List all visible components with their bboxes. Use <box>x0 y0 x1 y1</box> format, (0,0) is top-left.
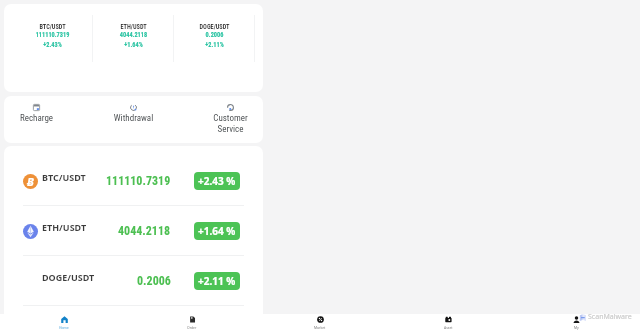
button[interactable]: BTC/USDT <box>12 4 93 92</box>
staticText: ScanMalware <box>588 312 632 322</box>
other: Home <box>61 316 68 323</box>
staticText: +2.43 % <box>198 174 236 188</box>
button[interactable]: ETH/USDT <box>93 4 174 92</box>
button[interactable]: My <box>512 314 640 331</box>
button[interactable]: Withdrawal <box>85 96 182 143</box>
other: Withdrawal <box>130 104 137 111</box>
other: Market <box>317 316 324 323</box>
staticText: +1.64 % <box>198 224 236 238</box>
staticText: 0.2006 <box>137 274 171 288</box>
other: My <box>573 316 580 323</box>
staticText: 111110.7319 <box>12 31 93 38</box>
staticText: Recharge <box>4 113 85 124</box>
staticText: +2.43% <box>12 41 93 48</box>
staticText: Order <box>187 325 197 330</box>
other: Asset <box>445 316 452 323</box>
staticText: DOGE/USDT <box>42 271 95 283</box>
button[interactable]: Customer Service <box>182 96 263 143</box>
staticText: +2.11% <box>174 41 255 48</box>
staticText: Home <box>59 325 69 330</box>
button[interactable]: Market <box>256 314 384 331</box>
staticText: DOGE/USDT <box>174 23 255 30</box>
staticText: My <box>574 325 579 330</box>
staticText: +1.64% <box>93 41 174 48</box>
staticText: Ƀ <box>27 174 34 189</box>
staticText: ETH/USDT <box>93 23 174 30</box>
staticText: 4044.2118 <box>118 224 171 238</box>
button[interactable]: Home <box>0 314 128 331</box>
staticText: 4044.2118 <box>93 31 174 38</box>
staticText: Asset <box>444 325 453 330</box>
button[interactable]: Asset <box>384 314 512 331</box>
staticText: BTC/USDT <box>12 23 93 30</box>
button[interactable]: Recharge <box>4 96 85 143</box>
staticText: +2.11 % <box>198 274 236 288</box>
button[interactable]: DOGE/USDT <box>174 4 255 92</box>
button[interactable]: Order <box>128 314 256 331</box>
other: Order <box>189 316 196 323</box>
staticText: BTC/USDT <box>42 171 86 183</box>
button[interactable]: ETH/USDT <box>4 206 263 256</box>
button[interactable]: DOGE/USDT <box>4 256 263 306</box>
other: Customer Service <box>227 104 234 111</box>
staticText: Customer Service <box>182 113 263 135</box>
button[interactable]: Ƀ <box>4 156 263 206</box>
staticText: Withdrawal <box>85 113 182 124</box>
staticText: ETH/USDT <box>42 221 87 233</box>
staticText: Market <box>314 325 326 330</box>
staticText: 0.2006 <box>174 31 255 38</box>
other: Recharge <box>33 104 40 111</box>
staticText: 111110.7319 <box>106 174 171 188</box>
